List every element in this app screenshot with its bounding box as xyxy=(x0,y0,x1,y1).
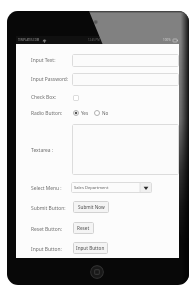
button[interactable]: Submit Now xyxy=(73,201,109,213)
staticText: Radio Button: xyxy=(31,110,63,117)
button[interactable] xyxy=(72,54,179,67)
staticText: 12:45 PM xyxy=(88,38,100,42)
staticText: Sales Department xyxy=(74,185,109,191)
staticText: Input Password: xyxy=(31,76,69,83)
button[interactable]: No xyxy=(94,108,109,118)
staticText: No xyxy=(102,110,109,116)
button[interactable]: Sales Department xyxy=(71,182,152,193)
staticText: Check Box: xyxy=(31,94,57,101)
button[interactable]: Input Button xyxy=(73,242,108,254)
staticText: TEMPLATES.COM xyxy=(18,38,40,42)
button[interactable]: Reset xyxy=(73,222,94,234)
staticText: Submit Now xyxy=(78,204,105,210)
staticText: Textarea : xyxy=(31,147,54,154)
staticText: 100% xyxy=(163,38,171,42)
staticText: Submit Button: xyxy=(31,205,66,212)
button[interactable]: Check Box xyxy=(73,95,79,101)
staticText: Reset xyxy=(77,225,90,231)
staticText: Input Button xyxy=(76,245,105,251)
button[interactable] xyxy=(72,124,179,175)
staticText: Reset Button: xyxy=(31,226,62,233)
button[interactable] xyxy=(72,73,179,86)
staticText: Input Button: xyxy=(31,246,62,253)
staticText: Input Text: xyxy=(31,57,56,64)
staticText: Yes xyxy=(81,110,89,116)
button[interactable]: Home xyxy=(90,265,104,279)
button[interactable]: Yes xyxy=(73,108,89,118)
staticText: Select Menu : xyxy=(31,185,62,192)
